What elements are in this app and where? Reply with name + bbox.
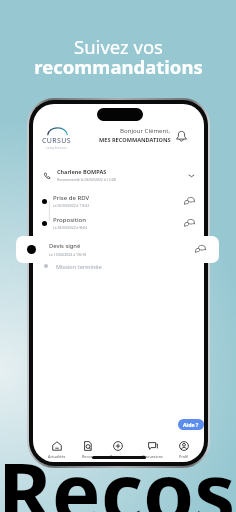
other: Appeler: [43, 171, 52, 180]
staticText: Proposition: [53, 216, 87, 224]
button[interactable]: Actualités: [47, 441, 67, 459]
staticText: Prise de RDV: [53, 194, 90, 202]
staticText: Le 28/03/2022 à 9h04: [53, 225, 88, 230]
staticText: Recos: [82, 454, 93, 459]
staticText: Actualités: [48, 454, 66, 459]
staticText: MES RECOMMANDATIONS: [99, 136, 171, 144]
staticText: CURSUS: [42, 136, 72, 146]
button[interactable]: Recos: [81, 441, 94, 459]
staticText: recommandations: [34, 54, 203, 79]
button[interactable]: Mission terminée: [33, 259, 204, 273]
staticText: Recommandé le 04/03/2022 à 12:08: [57, 177, 116, 182]
button[interactable]: Prise de RDV: [33, 192, 204, 210]
other: Réduire: [188, 172, 195, 179]
button[interactable]: [16, 236, 219, 263]
other: Discussion: [184, 196, 195, 207]
staticText: Discussions: [142, 454, 163, 459]
staticText: Le 06/03/2022 à 17h32: [53, 203, 90, 208]
staticText: Partager: [110, 454, 126, 459]
button[interactable]: Appeler: [33, 165, 204, 185]
staticText: Devis signé: [49, 242, 81, 250]
staticText: Recos: [0, 435, 234, 512]
button[interactable]: Aide ?: [178, 419, 204, 430]
button[interactable]: Discussions: [141, 441, 164, 459]
staticText: Le 15/04/2024 à 19h18: [49, 252, 87, 257]
button[interactable]: Proposition: [33, 214, 204, 232]
button[interactable]: Notifications: [175, 130, 188, 143]
other: Discussion: [184, 218, 195, 229]
staticText: Mission terminée: [56, 263, 102, 270]
staticText: compétences: [46, 146, 68, 150]
staticText: Profil: [179, 454, 189, 459]
button[interactable]: Profil: [178, 441, 190, 459]
staticText: Charlene BOMPAS: [57, 168, 107, 175]
button[interactable]: Partager: [109, 441, 127, 459]
other: Discussion: [195, 244, 206, 255]
staticText: Aide ?: [183, 421, 199, 428]
staticText: Bonjour Clément,: [120, 126, 171, 134]
staticText: Suivez vos: [74, 34, 163, 59]
